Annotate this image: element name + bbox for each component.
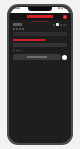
button[interactable]: Submit [62,55,67,60]
button[interactable]: Option 1 [53,24,55,26]
button[interactable]: Close [63,15,67,19]
button[interactable]: Logo [27,15,53,18]
button[interactable] [13,54,61,60]
button[interactable]: Option 2 [56,23,59,26]
